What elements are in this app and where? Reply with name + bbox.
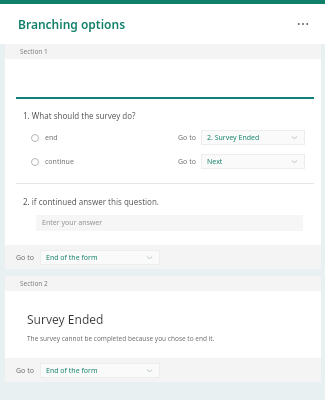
staticText: End of the form — [46, 253, 98, 263]
button[interactable]: End of the form — [40, 250, 160, 265]
staticText: Go to — [16, 253, 34, 263]
staticText: Next — [207, 157, 223, 167]
staticText: End of the form — [46, 366, 98, 376]
staticText: Section 2 — [20, 279, 48, 288]
staticText: Enter your answer — [42, 218, 103, 228]
staticText: 2. Survey Ended — [207, 133, 260, 143]
staticText: Branching options — [18, 16, 126, 32]
staticText: Survey Ended — [27, 311, 104, 327]
button[interactable]: Enter your answer — [36, 215, 303, 231]
button[interactable]: End of the form — [40, 363, 160, 378]
staticText: end — [45, 133, 58, 143]
button[interactable]: continue — [31, 154, 305, 169]
staticText: Go to — [178, 157, 196, 167]
staticText: The survey cannot be completed because y… — [27, 334, 215, 343]
staticText: Section 1 — [20, 47, 48, 56]
staticText: continue — [45, 157, 74, 167]
staticText: Go to — [178, 133, 196, 143]
button[interactable]: Next — [201, 154, 305, 169]
staticText: 2. if continued answer this question. — [23, 196, 160, 207]
button[interactable]: 2. Survey Ended — [201, 130, 305, 145]
button[interactable]: end — [31, 130, 305, 145]
staticText: Go to — [16, 366, 34, 376]
staticText: 1. What should the survey do? — [23, 110, 136, 121]
button[interactable]: More options — [291, 12, 315, 36]
